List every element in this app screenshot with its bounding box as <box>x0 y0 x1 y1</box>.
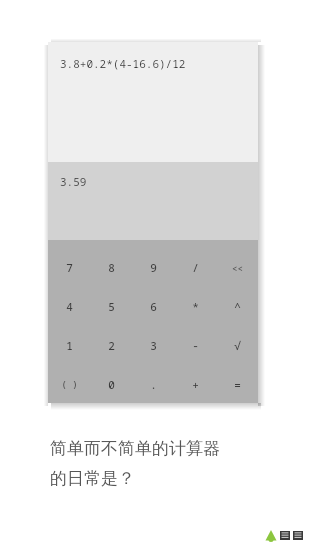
button[interactable]: - <box>174 326 216 365</box>
button[interactable]: 3.8+0.2*(4-16.6)/12 <box>48 42 258 162</box>
button[interactable]: << <box>216 248 258 287</box>
staticText: 9 <box>150 260 157 275</box>
staticText: 3.8+0.2*(4-16.6)/12 <box>60 56 186 71</box>
button[interactable]: 4 <box>48 287 90 326</box>
staticText: 3.59 <box>60 174 87 189</box>
staticText: << <box>232 262 243 274</box>
button[interactable]: ( ) <box>48 365 90 403</box>
button[interactable]: ^ <box>216 287 258 326</box>
staticText: √ <box>234 338 241 353</box>
staticText: ^ <box>234 299 241 314</box>
button[interactable]: * <box>174 287 216 326</box>
staticText: / <box>192 260 199 275</box>
button[interactable]: √ <box>216 326 258 365</box>
button[interactable]: + <box>174 365 216 403</box>
other: 安智市场 <box>265 529 305 543</box>
button[interactable]: 0 <box>90 365 132 403</box>
staticText: + <box>192 377 199 392</box>
button[interactable]: 5 <box>90 287 132 326</box>
button[interactable]: 3.59 <box>48 162 258 240</box>
button[interactable]: 1 <box>48 326 90 365</box>
staticText: 7 <box>66 260 73 275</box>
staticText: . <box>150 377 157 392</box>
staticText: * <box>192 299 199 314</box>
staticText: 4 <box>66 299 73 314</box>
staticText: 6 <box>150 299 157 314</box>
staticText: ( ) <box>61 378 78 390</box>
staticText: - <box>192 338 199 353</box>
staticText: 0 <box>108 377 115 392</box>
staticText: 2 <box>108 338 115 353</box>
button[interactable]: = <box>216 365 258 403</box>
button[interactable]: 2 <box>90 326 132 365</box>
button[interactable]: 8 <box>90 248 132 287</box>
staticText: 简单而不简单的计算器 <box>50 438 220 459</box>
button[interactable]: / <box>174 248 216 287</box>
button[interactable]: 7 <box>48 248 90 287</box>
staticText: 1 <box>66 338 73 353</box>
button[interactable]: 3 <box>132 326 174 365</box>
button[interactable]: 9 <box>132 248 174 287</box>
staticText: = <box>234 377 241 392</box>
button[interactable]: 6 <box>132 287 174 326</box>
staticText: 5 <box>108 299 115 314</box>
staticText: 3 <box>150 338 157 353</box>
staticText: 8 <box>108 260 115 275</box>
staticText: 的日常是？ <box>50 468 135 489</box>
